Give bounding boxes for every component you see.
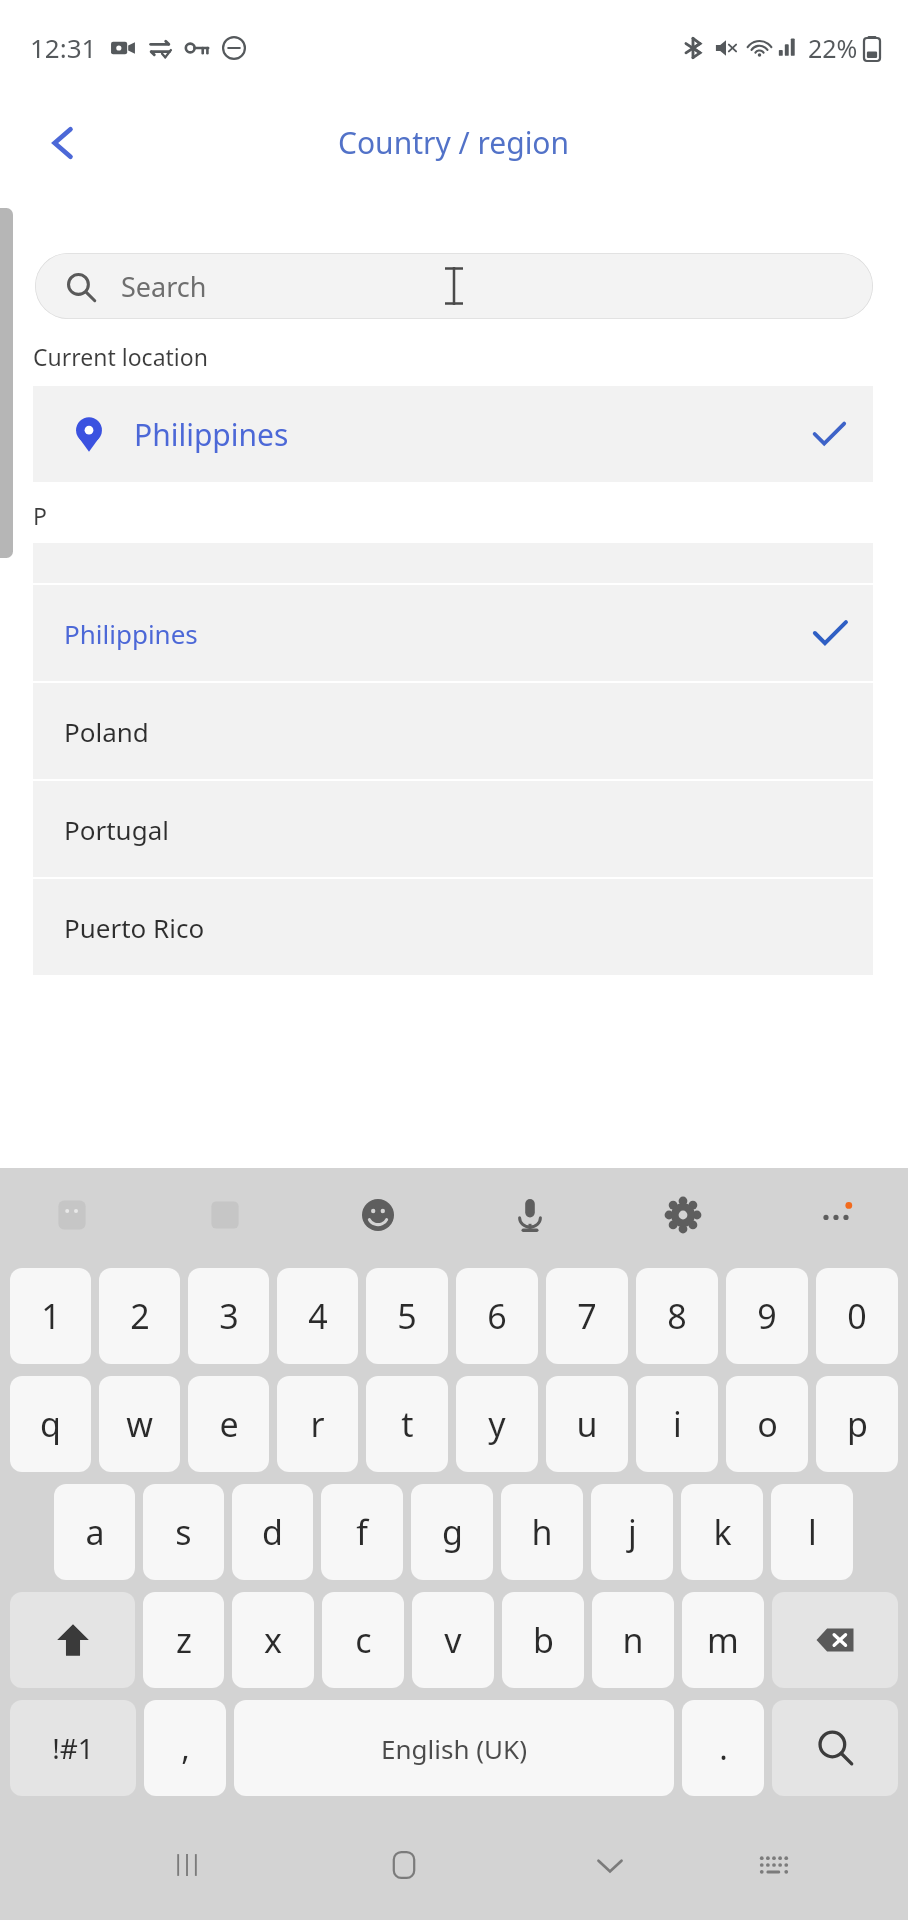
staticText: s <box>175 1509 192 1555</box>
button[interactable]: , <box>144 1700 226 1796</box>
staticText: Philippines <box>134 414 289 455</box>
staticText: z <box>176 1617 192 1663</box>
button[interactable]: Search <box>772 1700 898 1796</box>
button[interactable]: . <box>682 1700 764 1796</box>
button[interactable]: Recents <box>152 1830 222 1900</box>
button[interactable]: 5 <box>366 1268 448 1364</box>
button[interactable]: z <box>143 1592 224 1688</box>
staticText: !#1 <box>52 1729 94 1767</box>
button[interactable]: Poland <box>33 683 873 779</box>
button[interactable]: 1 <box>10 1268 91 1364</box>
button[interactable]: y <box>456 1376 538 1472</box>
staticText: h <box>531 1509 553 1555</box>
button[interactable]: Switch keyboard <box>739 1830 809 1900</box>
staticText: , <box>181 1726 190 1770</box>
staticText: 0 <box>847 1293 867 1339</box>
staticText: m <box>707 1617 739 1663</box>
button[interactable]: 0 <box>816 1268 898 1364</box>
button[interactable]: Home <box>369 1830 439 1900</box>
staticText: 3 <box>219 1293 239 1339</box>
button[interactable]: q <box>10 1376 91 1472</box>
button[interactable]: Keyboard settings <box>651 1183 715 1247</box>
staticText: f <box>356 1509 368 1555</box>
staticText: 12:31 <box>30 30 97 65</box>
button[interactable]: b <box>502 1592 584 1688</box>
staticText: t <box>401 1401 414 1447</box>
staticText: 2 <box>130 1293 150 1339</box>
button[interactable]: More options <box>804 1183 868 1247</box>
staticText: Portugal <box>64 812 169 847</box>
staticText: 6 <box>487 1293 507 1339</box>
button[interactable]: !#1 <box>10 1700 136 1796</box>
button[interactable]: Back <box>28 107 100 179</box>
button[interactable]: Philippines <box>33 386 873 482</box>
button[interactable]: a <box>54 1484 135 1580</box>
staticText: p <box>847 1401 868 1447</box>
button[interactable]: Search <box>35 253 873 319</box>
button[interactable]: u <box>546 1376 628 1472</box>
button[interactable]: n <box>592 1592 674 1688</box>
button[interactable]: v <box>412 1592 494 1688</box>
button[interactable]: Backspace <box>772 1592 898 1688</box>
button[interactable]: 8 <box>636 1268 718 1364</box>
button[interactable]: o <box>726 1376 808 1472</box>
button[interactable]: Portugal <box>33 781 873 877</box>
button[interactable]: English (UK) <box>234 1700 674 1796</box>
button[interactable]: 9 <box>726 1268 808 1364</box>
staticText: 5 <box>397 1293 417 1339</box>
staticText: Current location <box>33 341 208 372</box>
button[interactable]: g <box>411 1484 493 1580</box>
button[interactable]: GIF <box>193 1183 257 1247</box>
staticText: r <box>310 1401 325 1447</box>
staticText: c <box>355 1617 372 1663</box>
staticText: b <box>533 1617 554 1663</box>
button[interactable]: m <box>682 1592 764 1688</box>
button[interactable]: l <box>771 1484 853 1580</box>
button[interactable]: r <box>277 1376 358 1472</box>
staticText: i <box>673 1401 682 1447</box>
staticText: d <box>262 1509 283 1555</box>
button[interactable]: x <box>232 1592 314 1688</box>
staticText: 4 <box>308 1293 328 1339</box>
staticText: o <box>757 1401 778 1447</box>
staticText: Poland <box>64 714 149 749</box>
button[interactable]: 6 <box>456 1268 538 1364</box>
button[interactable]: Emoji <box>346 1183 410 1247</box>
button[interactable]: e <box>188 1376 269 1472</box>
button[interactable]: t <box>366 1376 448 1472</box>
button[interactable]: p <box>816 1376 898 1472</box>
staticText: English (UK) <box>381 1731 527 1766</box>
button[interactable]: 2 <box>99 1268 180 1364</box>
button[interactable]: c <box>322 1592 404 1688</box>
button[interactable]: 3 <box>188 1268 269 1364</box>
staticText: k <box>713 1509 732 1555</box>
staticText: Puerto Rico <box>64 910 205 945</box>
staticText: u <box>576 1401 598 1447</box>
button[interactable]: w <box>99 1376 180 1472</box>
button[interactable]: Philippines <box>33 585 873 681</box>
button[interactable]: i <box>636 1376 718 1472</box>
button[interactable]: Hide keyboard <box>575 1830 645 1900</box>
staticText: x <box>264 1617 282 1663</box>
staticText: 1 <box>41 1293 61 1339</box>
button[interactable]: s <box>143 1484 224 1580</box>
button[interactable]: Voice input <box>498 1183 562 1247</box>
staticText: 9 <box>757 1293 777 1339</box>
button[interactable]: h <box>501 1484 583 1580</box>
button[interactable]: 4 <box>277 1268 358 1364</box>
button[interactable]: Puerto Rico <box>33 879 873 975</box>
button[interactable]: Shift <box>10 1592 135 1688</box>
button[interactable]: 7 <box>546 1268 628 1364</box>
button[interactable]: j <box>591 1484 673 1580</box>
staticText: . <box>719 1726 728 1770</box>
staticText: v <box>444 1617 462 1663</box>
button[interactable]: f <box>321 1484 403 1580</box>
staticText: j <box>628 1509 637 1555</box>
button[interactable]: d <box>232 1484 313 1580</box>
staticText: Philippines <box>64 616 198 651</box>
staticText: 7 <box>577 1293 597 1339</box>
staticText: l <box>808 1509 817 1555</box>
button[interactable]: Sticker <box>40 1183 104 1247</box>
button[interactable]: k <box>681 1484 763 1580</box>
staticText: e <box>219 1401 239 1447</box>
